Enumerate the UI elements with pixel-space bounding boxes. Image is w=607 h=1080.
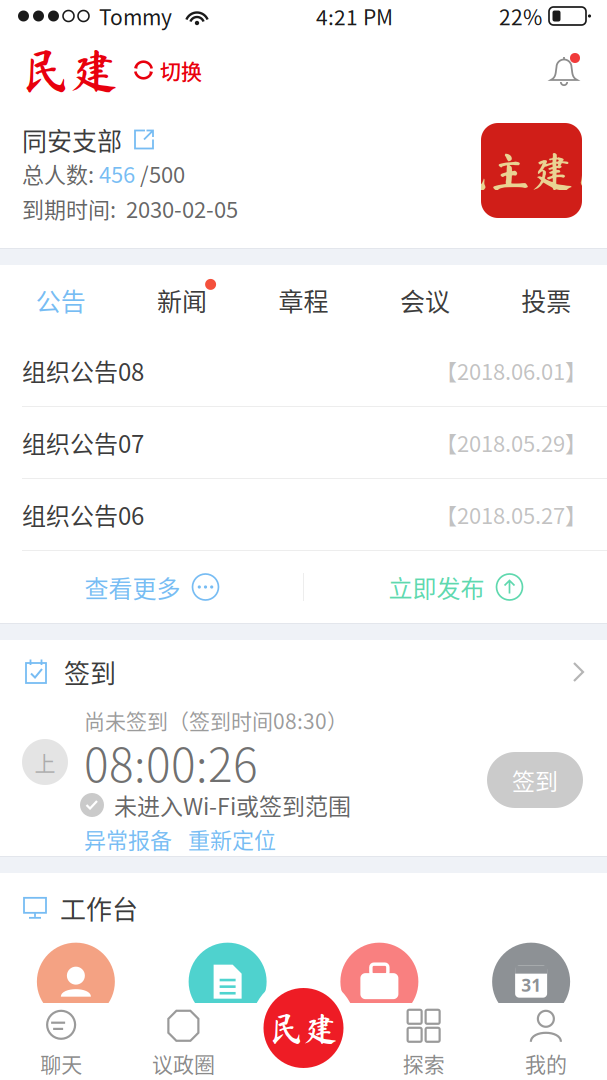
staticText: 签到 <box>64 653 116 691</box>
staticText: 【2018.06.01】 <box>435 355 587 386</box>
staticText: 公告 <box>36 282 86 318</box>
button[interactable]: 会议 <box>364 265 486 335</box>
button[interactable]: 签到 <box>0 640 607 704</box>
staticText: 民建 <box>22 46 118 94</box>
button[interactable]: 聊天 <box>0 1003 122 1080</box>
staticText: 投票 <box>521 282 571 318</box>
staticText: 民建 <box>269 1011 337 1045</box>
button[interactable]: 异常报备 <box>84 823 172 855</box>
button[interactable]: 组织公告06 <box>0 479 607 550</box>
staticText: 456 <box>99 158 135 189</box>
staticText: 切换 <box>160 55 202 85</box>
staticText: 异常报备 <box>84 823 172 855</box>
button[interactable]: 通知 <box>545 47 583 93</box>
button[interactable]: 组织公告07 <box>0 407 607 478</box>
button[interactable]: 立即发布 <box>304 551 607 623</box>
staticText: 尚未签到（签到时间08:30） <box>84 705 348 735</box>
staticText: 组织公告07 <box>22 425 144 460</box>
button[interactable]: 重新定位 <box>188 823 276 855</box>
staticText: 新闻 <box>157 282 207 318</box>
staticText: 议政圈 <box>152 1048 215 1078</box>
staticText: 【2018.05.29】 <box>435 427 587 458</box>
button[interactable]: 我的 <box>485 1003 607 1080</box>
button[interactable]: 签到 <box>487 752 583 808</box>
button[interactable]: 同安支部 <box>22 123 155 156</box>
staticText: 同安支部 <box>22 121 122 158</box>
staticText: 组织公告06 <box>22 497 144 532</box>
staticText: 民主建国 <box>447 149 607 191</box>
staticText: 总人数: <box>22 158 99 189</box>
staticText: Tommy <box>99 1 172 31</box>
staticText: 查看更多 <box>84 570 180 604</box>
button[interactable]: 新闻 <box>121 265 243 335</box>
button[interactable]: 公文 <box>152 943 304 1021</box>
staticText: 探索 <box>403 1048 445 1078</box>
staticText: 【2018.05.27】 <box>435 499 587 530</box>
staticText: 立即发布 <box>388 570 484 604</box>
button[interactable]: 组织公告08 <box>0 335 607 406</box>
button[interactable]: 事务 <box>303 943 455 1021</box>
staticText: /500 <box>135 158 185 189</box>
staticText: 聊天 <box>40 1048 82 1078</box>
button[interactable]: 议政圈 <box>122 1003 244 1080</box>
button[interactable]: 会员 <box>0 943 152 1021</box>
staticText: 章程 <box>278 282 328 318</box>
staticText: 组织公告08 <box>22 353 144 388</box>
staticText: 签到 <box>512 763 558 797</box>
staticText: 重新定位 <box>188 823 276 855</box>
button[interactable]: 探索 <box>362 1003 485 1080</box>
button[interactable]: 章程 <box>243 265 364 335</box>
staticText: 31 <box>521 974 541 997</box>
staticText: 4:21 PM <box>316 1 393 31</box>
staticText: 我的 <box>525 1048 567 1078</box>
staticText: 会议 <box>400 282 450 318</box>
staticText: 未进入Wi-Fi或签到范围 <box>114 788 351 822</box>
button[interactable]: 查看更多 <box>0 551 303 623</box>
staticText: 到期时间: 2030-02-05 <box>22 193 238 224</box>
staticText: 22% <box>499 1 542 31</box>
staticText: 08:00:26 <box>84 729 258 795</box>
staticText: 工作台 <box>60 889 138 927</box>
button[interactable]: 公告 <box>0 265 121 335</box>
button[interactable]: 日程 <box>455 943 607 1021</box>
button[interactable]: 民建 <box>250 975 356 1080</box>
staticText: 上 <box>34 747 55 777</box>
button[interactable]: 民建 <box>22 40 202 100</box>
button[interactable]: 投票 <box>486 265 607 335</box>
